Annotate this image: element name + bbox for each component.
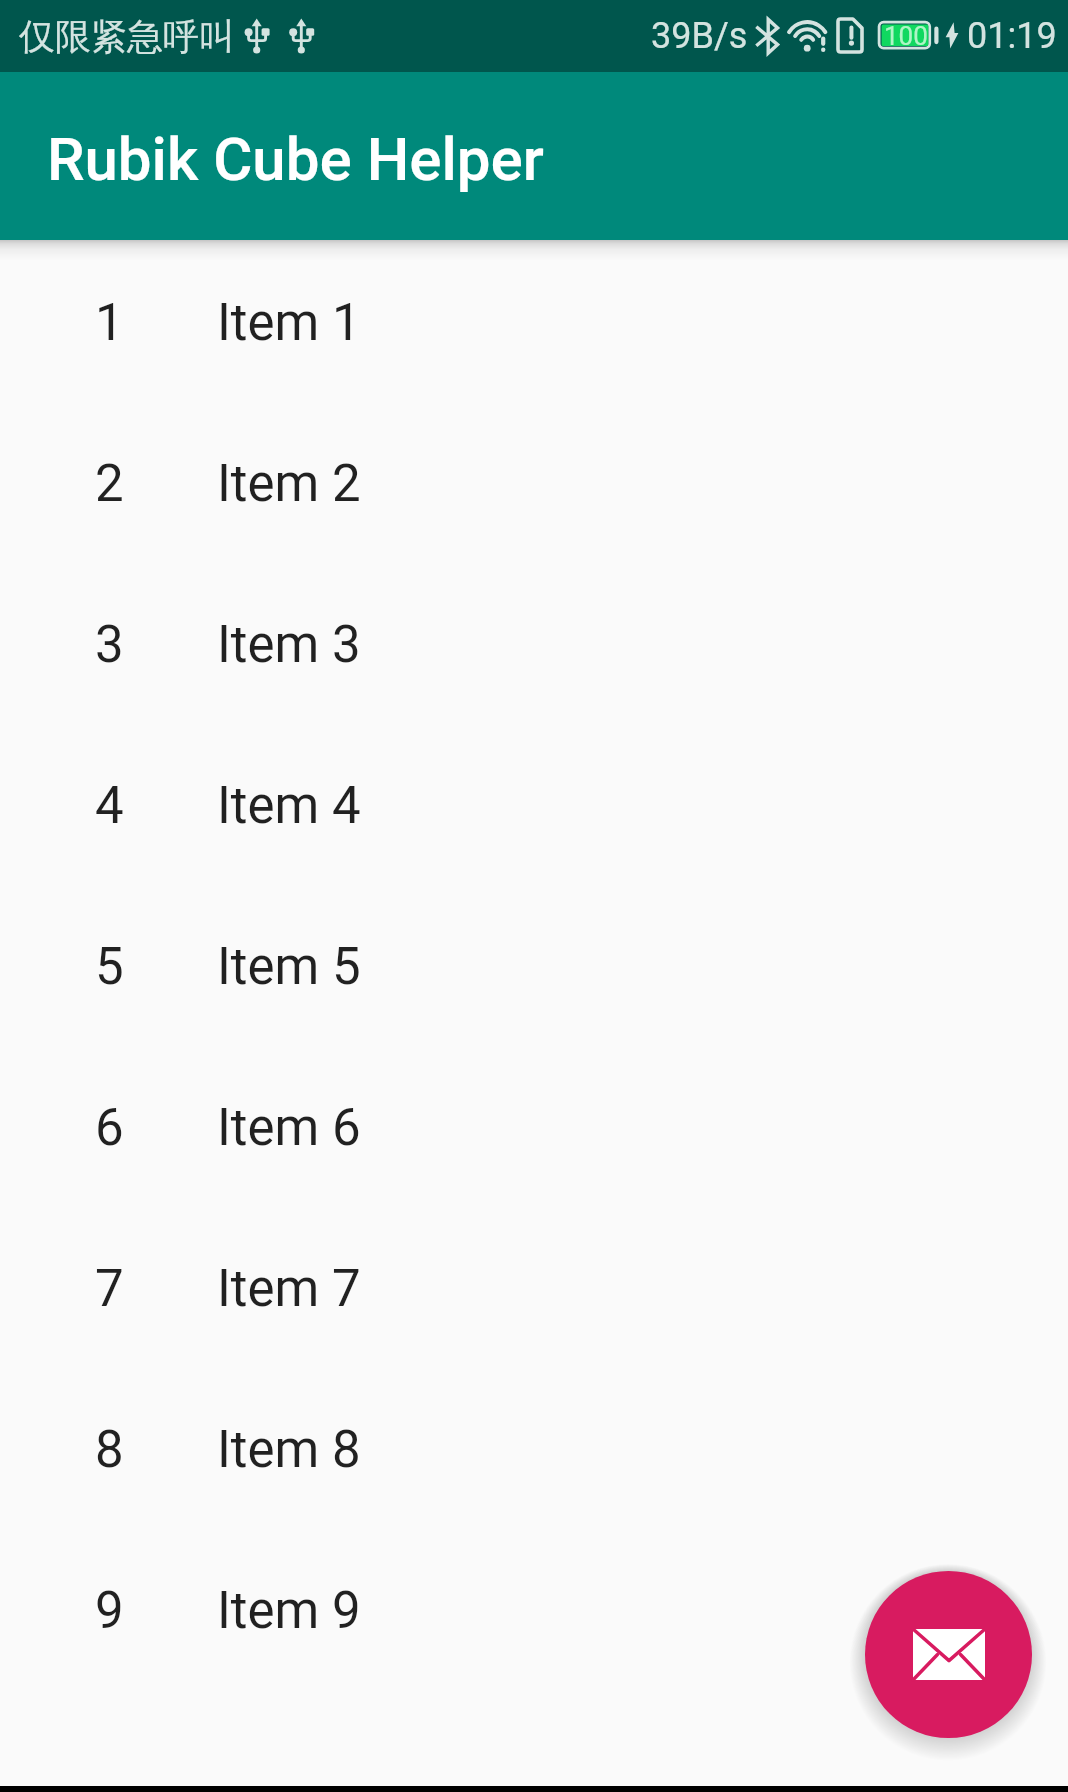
staticText: Item 2 (217, 454, 361, 514)
staticText: Item 9 (217, 1581, 361, 1641)
staticText: Item 8 (217, 1420, 361, 1480)
staticText: 9 (95, 1581, 124, 1641)
button[interactable]: 4 (0, 723, 1068, 884)
button[interactable]: 2 (0, 401, 1068, 562)
staticText: 100 (884, 21, 928, 51)
button[interactable]: 3 (0, 562, 1068, 723)
button[interactable]: 8 (0, 1367, 1068, 1528)
button[interactable]: 5 (0, 884, 1068, 1045)
staticText: Item 7 (217, 1259, 361, 1319)
staticText: 01:19 (967, 15, 1057, 57)
staticText: 8 (95, 1420, 124, 1480)
staticText: 7 (95, 1259, 124, 1319)
button[interactable]: Compose message (865, 1571, 1032, 1738)
staticText: Item 5 (217, 937, 361, 997)
staticText: 5 (95, 937, 124, 997)
staticText: 仅限紧急呼叫 (19, 14, 235, 59)
staticText: Item 3 (217, 615, 361, 675)
button[interactable]: 7 (0, 1206, 1068, 1367)
staticText: 4 (95, 776, 124, 836)
staticText: 2 (95, 454, 124, 514)
staticText: Item 4 (217, 776, 361, 836)
staticText: 39B/s (651, 15, 748, 57)
button[interactable]: 9 (0, 1528, 1068, 1689)
staticText: 3 (95, 615, 124, 675)
staticText: Item 6 (217, 1098, 361, 1158)
button[interactable]: 6 (0, 1045, 1068, 1206)
staticText: Rubik Cube Helper (47, 124, 544, 194)
staticText: Item 1 (217, 293, 361, 353)
button[interactable]: 1 (0, 240, 1068, 401)
staticText: 6 (95, 1098, 124, 1158)
staticText: 1 (95, 293, 124, 353)
